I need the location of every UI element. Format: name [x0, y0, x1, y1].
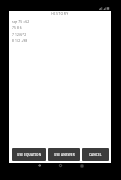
- button[interactable]: 8 1/2 +98: [9, 37, 111, 43]
- staticText: CANCEL: [89, 153, 102, 157]
- button[interactable]: Home: [55, 160, 66, 171]
- staticText: 7 12/6*2: [12, 32, 27, 36]
- button[interactable]: Back: [34, 160, 45, 171]
- staticText: USE ANSWER: [54, 153, 75, 157]
- staticText: USE EQUATION: [17, 153, 42, 157]
- button[interactable]: 75 8 6: [9, 24, 111, 30]
- button[interactable]: sqr 75 =62: [9, 18, 111, 24]
- staticText: 75 8 6: [12, 25, 22, 29]
- button[interactable]: USE EQUATION: [12, 148, 46, 161]
- button[interactable]: CANCEL: [82, 148, 109, 161]
- staticText: HISTORY: [9, 11, 111, 16]
- button[interactable]: 7 12/6*2: [9, 31, 111, 37]
- button[interactable]: Recent apps: [76, 160, 87, 171]
- button[interactable]: USE ANSWER: [48, 148, 80, 161]
- staticText: sqr 75 =62: [12, 19, 30, 23]
- staticText: 8 1/2 +98: [12, 38, 28, 42]
